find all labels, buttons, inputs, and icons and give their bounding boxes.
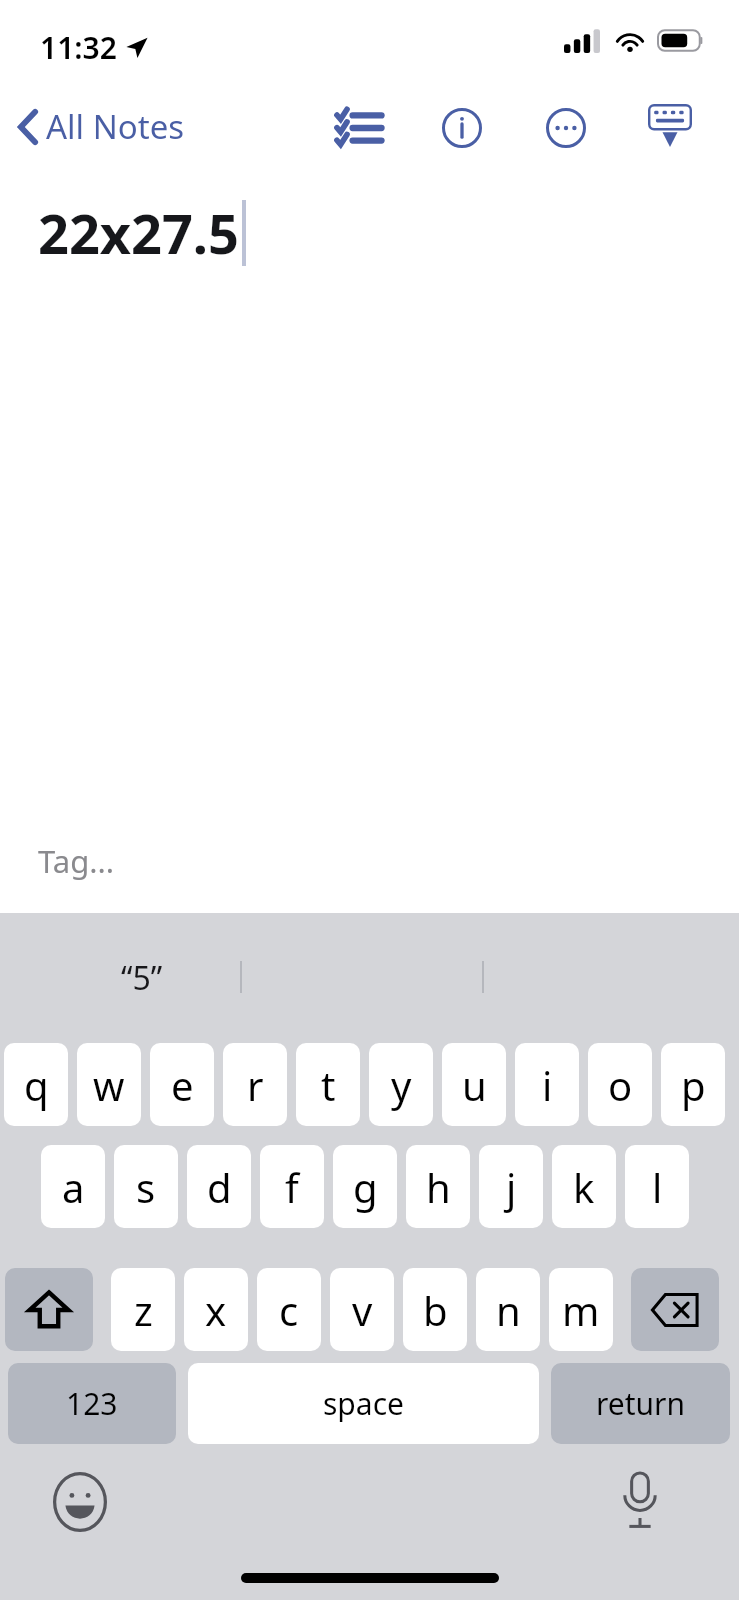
button[interactable]: x xyxy=(184,1268,248,1351)
staticText: q xyxy=(24,1058,49,1112)
button[interactable]: z xyxy=(111,1268,175,1351)
button[interactable]: m xyxy=(549,1268,613,1351)
button[interactable]: n xyxy=(476,1268,540,1351)
button[interactable]: q xyxy=(4,1043,68,1126)
staticText: f xyxy=(285,1160,299,1214)
button[interactable]: Hide keyboard xyxy=(643,99,697,153)
button[interactable]: Note information xyxy=(435,101,489,155)
staticText: l xyxy=(652,1160,663,1214)
button[interactable]: u xyxy=(442,1043,506,1126)
staticText: x xyxy=(205,1283,227,1337)
staticText: y xyxy=(391,1058,412,1112)
button[interactable]: f xyxy=(260,1145,324,1228)
button[interactable]: b xyxy=(403,1268,467,1351)
staticText: m xyxy=(562,1283,600,1337)
staticText: e xyxy=(171,1058,194,1112)
staticText: space xyxy=(323,1383,404,1424)
button[interactable]: Backspace xyxy=(631,1268,719,1351)
staticText: “5” xyxy=(121,956,163,1000)
staticText: Tag... xyxy=(38,840,115,882)
button[interactable]: v xyxy=(330,1268,394,1351)
button[interactable]: All Notes xyxy=(10,100,191,153)
staticText: z xyxy=(134,1283,153,1337)
button[interactable]: Checklist xyxy=(332,101,386,155)
staticText: return xyxy=(596,1383,686,1424)
button[interactable]: j xyxy=(479,1145,543,1228)
button[interactable]: More options xyxy=(539,101,593,155)
staticText: t xyxy=(321,1058,336,1112)
staticText: i xyxy=(542,1058,553,1112)
button[interactable]: a xyxy=(41,1145,105,1228)
staticText: g xyxy=(353,1160,378,1214)
button[interactable]: i xyxy=(515,1043,579,1126)
staticText: a xyxy=(62,1160,85,1214)
staticText: r xyxy=(247,1058,264,1112)
staticText: d xyxy=(207,1160,232,1214)
button[interactable]: 123 xyxy=(8,1363,176,1444)
staticText: b xyxy=(423,1283,448,1337)
button[interactable]: s xyxy=(114,1145,178,1228)
button[interactable]: l xyxy=(625,1145,689,1228)
button[interactable]: Shift xyxy=(5,1268,93,1351)
button[interactable]: Emoji keyboard xyxy=(48,1470,112,1534)
staticText: k xyxy=(573,1160,595,1214)
button[interactable]: “5” xyxy=(72,940,212,1016)
staticText: 22x27.5 xyxy=(38,196,239,270)
button[interactable]: e xyxy=(150,1043,214,1126)
staticText: c xyxy=(279,1283,299,1337)
button[interactable]: g xyxy=(333,1145,397,1228)
button[interactable]: t xyxy=(296,1043,360,1126)
button[interactable]: w xyxy=(77,1043,141,1126)
staticText: p xyxy=(681,1058,706,1112)
staticText: o xyxy=(608,1058,633,1112)
button[interactable]: k xyxy=(552,1145,616,1228)
staticText: w xyxy=(93,1058,125,1112)
button[interactable]: return xyxy=(551,1363,730,1444)
button[interactable]: Tag... xyxy=(0,825,739,897)
staticText: s xyxy=(136,1160,156,1214)
staticText: u xyxy=(462,1058,487,1112)
staticText: h xyxy=(426,1160,451,1214)
button[interactable]: o xyxy=(588,1043,652,1126)
button[interactable]: r xyxy=(223,1043,287,1126)
button[interactable]: Dictation xyxy=(608,1468,672,1532)
staticText: n xyxy=(496,1283,521,1337)
staticText: All Notes xyxy=(46,104,185,149)
staticText: j xyxy=(506,1160,517,1214)
button[interactable]: c xyxy=(257,1268,321,1351)
staticText: 123 xyxy=(66,1383,118,1424)
button[interactable]: p xyxy=(661,1043,725,1126)
button[interactable]: h xyxy=(406,1145,470,1228)
button[interactable]: space xyxy=(188,1363,539,1444)
staticText: 11:32 xyxy=(40,27,117,68)
button[interactable]: d xyxy=(187,1145,251,1228)
staticText: v xyxy=(352,1283,373,1337)
button[interactable]: y xyxy=(369,1043,433,1126)
